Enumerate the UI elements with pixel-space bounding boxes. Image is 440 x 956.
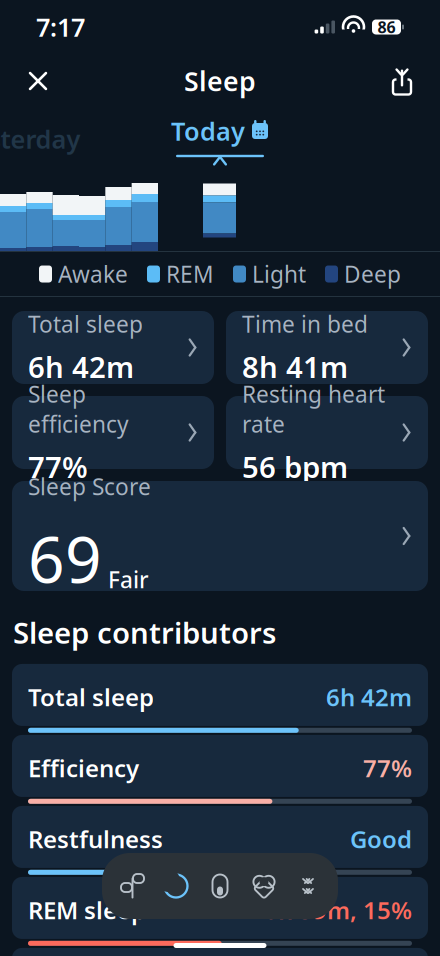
staticText: Efficiency: [28, 752, 139, 784]
staticText: Deep: [344, 259, 401, 289]
staticText: 6h 42m: [28, 347, 134, 386]
staticText: Fair: [108, 564, 149, 594]
staticText: 8h 41m: [242, 347, 348, 386]
button[interactable]: Close: [16, 59, 60, 103]
button[interactable]: Activity: [198, 864, 242, 908]
staticText: Restfulness: [28, 823, 163, 855]
staticText: 0h 59m, 15%: [264, 894, 412, 926]
staticText: REM sleep: [28, 894, 146, 926]
staticText: Yesterday: [0, 122, 80, 156]
staticText: 69: [28, 516, 102, 601]
button[interactable]: Readiness: [110, 864, 154, 908]
staticText: 77%: [28, 447, 88, 486]
staticText: 86: [377, 16, 395, 38]
button[interactable]: Total sleep: [12, 311, 214, 384]
button[interactable]: Sleep Score: [12, 481, 428, 591]
staticText: 6h 42m: [326, 681, 412, 713]
button[interactable]: Deep sleep: [12, 948, 428, 956]
staticText: 56 bpm: [242, 447, 348, 486]
staticText: Resting heart rate: [242, 379, 385, 439]
staticText: Sleep: [184, 63, 256, 99]
staticText: Awake: [58, 259, 128, 289]
staticText: REM: [166, 259, 214, 289]
button[interactable]: Time in bed: [226, 311, 428, 384]
staticText: Today: [171, 114, 245, 148]
staticText: Sleep contributors: [13, 613, 276, 652]
staticText: Light: [252, 259, 306, 289]
button[interactable]: Sleep: [154, 864, 198, 908]
staticText: Time in bed: [242, 309, 368, 339]
button[interactable]: Restfulness: [12, 806, 428, 868]
staticText: Total sleep: [28, 681, 154, 713]
button[interactable]: Total sleep: [12, 664, 428, 726]
button[interactable]: Today: [155, 117, 285, 161]
button[interactable]: Heart: [242, 864, 286, 908]
staticText: Sleep Score: [28, 471, 151, 502]
button[interactable]: REM sleep: [12, 877, 428, 939]
button[interactable]: Resting heart rate: [226, 396, 428, 469]
staticText: Sleep efficiency: [28, 379, 129, 439]
staticText: Good: [350, 823, 412, 855]
button[interactable]: Sleep efficiency: [12, 396, 214, 469]
button[interactable]: Trends: [286, 864, 330, 908]
staticText: Total sleep: [28, 309, 143, 339]
button[interactable]: Share: [380, 59, 424, 103]
staticText: 77%: [363, 752, 412, 784]
staticText: 7:17: [36, 10, 85, 44]
button[interactable]: Efficiency: [12, 735, 428, 797]
button[interactable]: Yesterday: [0, 117, 95, 161]
